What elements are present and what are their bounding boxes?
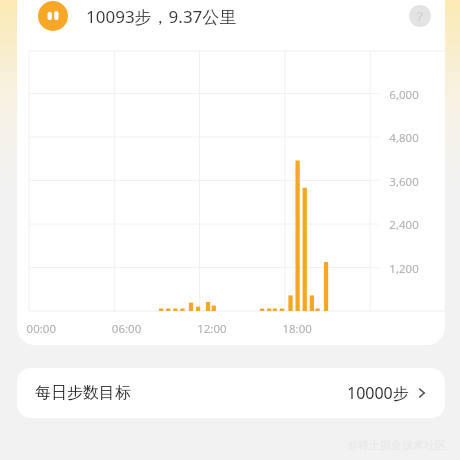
staticText: 10093步，9.37公里 [86,5,237,28]
staticText: @稀土掘金技术社区 [348,437,446,452]
staticText: ? [417,7,423,25]
button[interactable]: 每日步数目标 [17,368,445,418]
button[interactable]: Help [409,5,431,27]
staticText: 每日步数目标 [35,383,131,403]
button[interactable]: Steps [17,0,445,32]
other: Steps [38,1,68,31]
staticText: 10000步 [347,382,409,404]
